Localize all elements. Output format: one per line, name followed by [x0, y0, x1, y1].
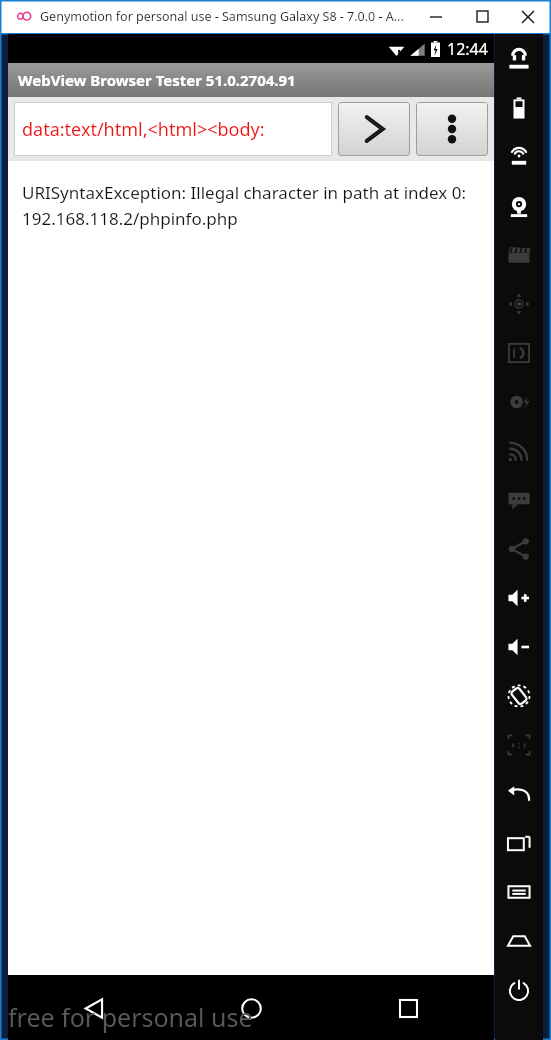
staticText: URISyntaxException: Illegal character in… — [22, 181, 476, 230]
button[interactable]: Recents — [380, 980, 436, 1036]
button[interactable]: Home — [495, 916, 543, 965]
button[interactable]: Video — [495, 230, 543, 279]
staticText: Genymotion for personal use - Samsung Ga… — [40, 8, 404, 25]
button[interactable]: Maximize — [459, 0, 505, 33]
button[interactable]: Battery — [495, 83, 543, 132]
button[interactable]: Accelerometer — [495, 279, 543, 328]
button[interactable]: Recents — [495, 818, 543, 867]
button[interactable]: Volume down — [495, 622, 543, 671]
button[interactable]: GPS — [495, 132, 543, 181]
button[interactable]: Camera — [495, 181, 543, 230]
button[interactable]: Scale 1:1 — [495, 720, 543, 769]
button[interactable]: Home — [223, 980, 279, 1036]
staticText: 12:44 — [447, 38, 488, 60]
button[interactable]: Network — [495, 426, 543, 475]
button[interactable]: SMS — [495, 475, 543, 524]
button[interactable]: Menu — [495, 867, 543, 916]
button[interactable]: Power — [495, 965, 543, 1014]
button[interactable]: Volume up — [495, 573, 543, 622]
button[interactable]: GAPPS — [495, 34, 543, 83]
button[interactable]: Share — [495, 524, 543, 573]
button[interactable]: Minimize — [413, 0, 459, 33]
button[interactable]: Rotate — [495, 671, 543, 720]
button[interactable]: Back — [495, 769, 543, 818]
button[interactable]: Back — [66, 980, 122, 1036]
button[interactable]: Close — [505, 0, 551, 33]
staticText: free for personal use — [8, 1000, 253, 1034]
button[interactable]: Go — [338, 102, 410, 156]
staticText: WebView Browser Tester 51.0.2704.91 — [18, 70, 296, 90]
staticText: data:text/html,<html><body: — [22, 117, 265, 142]
button[interactable]: More options — [416, 102, 488, 156]
button[interactable]: Identifiers — [495, 328, 543, 377]
button[interactable]: Disk IO — [495, 377, 543, 426]
button[interactable]: data:text/html,<html><body: — [14, 102, 332, 156]
